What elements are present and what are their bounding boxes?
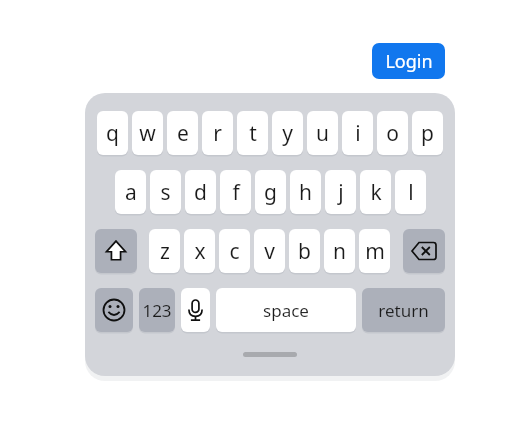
staticText: d xyxy=(194,178,207,207)
button[interactable]: e xyxy=(167,111,198,155)
button[interactable]: j xyxy=(325,170,356,214)
button[interactable]: p xyxy=(412,111,443,155)
button[interactable]: space xyxy=(216,288,356,332)
staticText: u xyxy=(316,119,329,148)
button[interactable]: g xyxy=(255,170,286,214)
staticText: return xyxy=(378,299,429,322)
button[interactable]: b xyxy=(289,229,320,273)
button[interactable]: k xyxy=(360,170,391,214)
button[interactable]: a xyxy=(115,170,146,214)
button[interactable]: return xyxy=(362,288,445,332)
button[interactable]: x xyxy=(184,229,215,273)
staticText: x xyxy=(194,237,206,266)
button[interactable]: r xyxy=(202,111,233,155)
staticText: z xyxy=(160,237,170,266)
staticText: t xyxy=(249,119,257,148)
staticText: j xyxy=(338,178,344,207)
button[interactable]: v xyxy=(254,229,285,273)
staticText: i xyxy=(355,119,361,148)
button[interactable]: l xyxy=(395,170,426,214)
button[interactable]: Emoji keyboard xyxy=(95,288,133,332)
button[interactable]: 123 xyxy=(139,288,175,332)
button[interactable]: Shift xyxy=(95,229,137,273)
staticText: y xyxy=(282,119,293,148)
button[interactable]: f xyxy=(220,170,251,214)
staticText: v xyxy=(264,237,275,266)
staticText: s xyxy=(160,178,171,207)
staticText: 123 xyxy=(142,299,172,322)
staticText: l xyxy=(408,178,414,207)
button[interactable]: o xyxy=(377,111,408,155)
button[interactable]: t xyxy=(237,111,268,155)
button[interactable]: w xyxy=(132,111,163,155)
staticText: o xyxy=(386,119,399,148)
staticText: a xyxy=(125,178,137,207)
button[interactable]: Voice input xyxy=(181,288,210,332)
staticText: h xyxy=(299,178,312,207)
staticText: r xyxy=(213,119,222,148)
button[interactable]: h xyxy=(290,170,321,214)
staticText: k xyxy=(370,178,382,207)
staticText: q xyxy=(106,119,119,148)
button[interactable]: q xyxy=(97,111,128,155)
button[interactable]: m xyxy=(359,229,390,273)
staticText: Login xyxy=(385,49,433,74)
button[interactable]: c xyxy=(219,229,250,273)
staticText: space xyxy=(263,299,309,322)
button[interactable]: d xyxy=(185,170,216,214)
staticText: g xyxy=(264,178,277,207)
button[interactable]: y xyxy=(272,111,303,155)
button[interactable]: Delete xyxy=(403,229,445,273)
staticText: n xyxy=(333,237,346,266)
button[interactable]: s xyxy=(150,170,181,214)
staticText: c xyxy=(229,237,240,266)
staticText: f xyxy=(232,178,240,207)
button[interactable]: i xyxy=(342,111,373,155)
staticText: e xyxy=(177,119,189,148)
staticText: w xyxy=(139,119,156,148)
staticText: m xyxy=(365,237,385,266)
staticText: b xyxy=(298,237,311,266)
staticText: p xyxy=(421,119,434,148)
button[interactable]: Login xyxy=(372,43,445,79)
button[interactable]: u xyxy=(307,111,338,155)
button[interactable]: n xyxy=(324,229,355,273)
button[interactable]: z xyxy=(149,229,180,273)
